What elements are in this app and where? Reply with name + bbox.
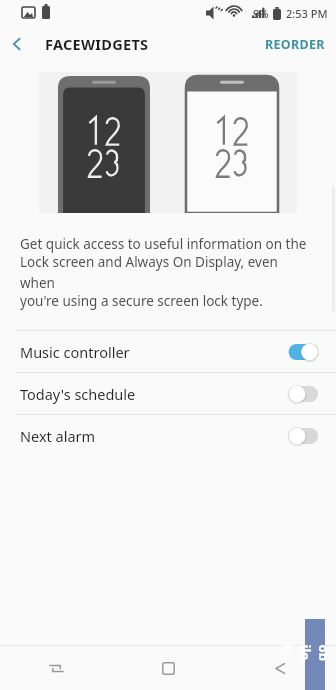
staticText: Next alarm xyxy=(20,426,96,446)
button[interactable]: Music controller xyxy=(0,331,336,372)
button[interactable]: Today's schedule xyxy=(0,373,336,414)
other: Off xyxy=(283,426,318,446)
staticText: 9% xyxy=(253,6,269,21)
staticText: 2:53 PM xyxy=(286,6,328,21)
button[interactable]: Next alarm xyxy=(0,415,336,456)
button[interactable]: REORDER xyxy=(254,30,336,59)
button[interactable]: Home xyxy=(112,646,224,690)
staticText: Lock screen and Always On Display, even … xyxy=(20,253,312,292)
other: On xyxy=(283,342,318,362)
staticText: REORDER xyxy=(265,36,325,53)
staticText: you're using a secure screen lock type. xyxy=(20,292,263,310)
staticText: Get quick access to useful information o… xyxy=(20,235,307,253)
staticText: Music controller xyxy=(20,342,130,362)
staticText: mobile.ir xyxy=(279,644,336,664)
staticText: Today's schedule xyxy=(20,384,136,404)
button[interactable]: Back xyxy=(224,646,336,690)
staticText: FACEWIDGETS xyxy=(45,34,149,54)
other: Off xyxy=(283,384,318,404)
button[interactable]: Recents xyxy=(0,646,112,690)
button[interactable]: Navigate up xyxy=(0,27,34,61)
